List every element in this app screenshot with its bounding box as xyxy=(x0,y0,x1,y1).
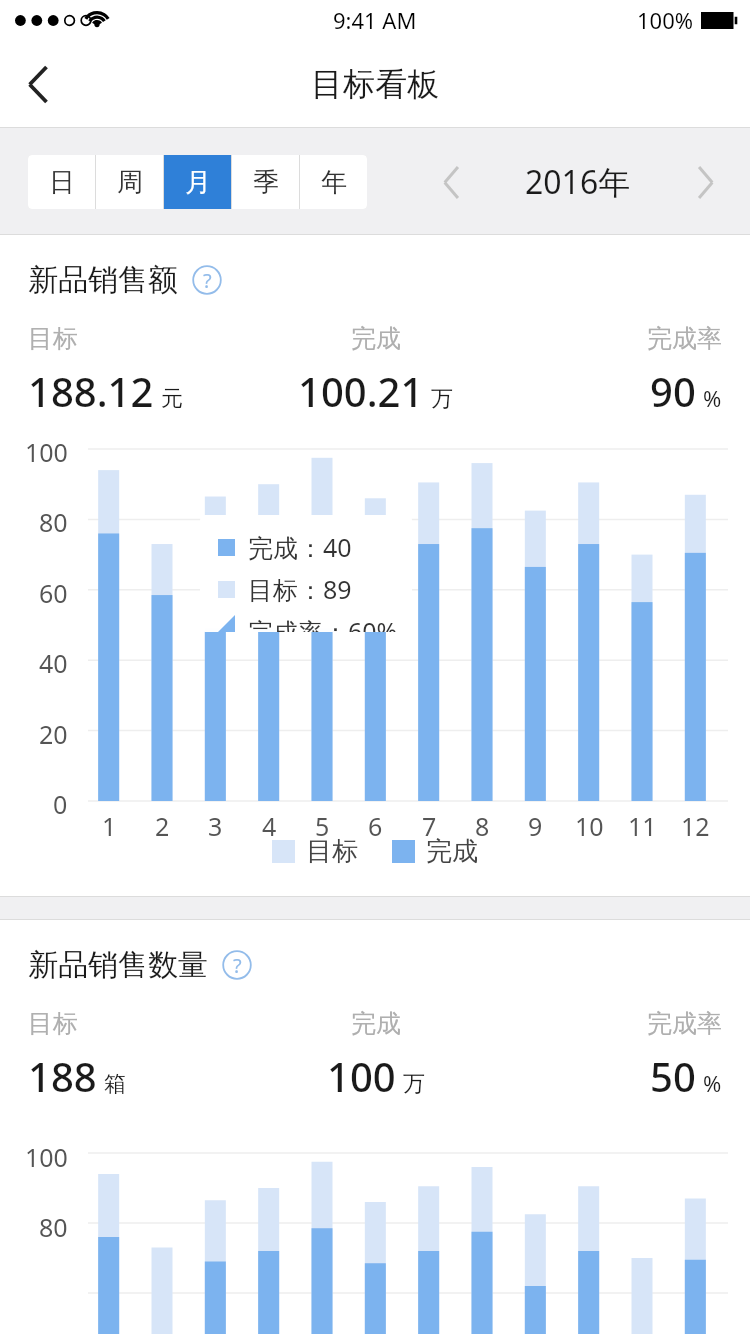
staticText: 箱 xyxy=(104,1070,126,1098)
staticText: 100.21 xyxy=(298,364,424,418)
button[interactable]: Next year xyxy=(676,153,734,211)
staticText: 目标 xyxy=(28,1008,78,1039)
staticText: 周 xyxy=(117,166,143,199)
button[interactable]: 月 xyxy=(164,155,231,209)
staticText: 90 xyxy=(650,364,696,418)
staticText: 11 xyxy=(628,809,657,843)
staticText: 1 xyxy=(102,809,117,843)
button[interactable]: 目标 xyxy=(272,835,358,868)
staticText: 完成：40 xyxy=(248,530,352,564)
button[interactable]: 完成 xyxy=(392,835,478,868)
staticText: 日 xyxy=(49,166,75,199)
staticText: 6 xyxy=(368,809,383,843)
staticText: ? xyxy=(203,267,212,294)
staticText: 完成率：60% xyxy=(248,614,398,632)
staticText: 188 xyxy=(28,1049,97,1103)
staticText: 3 xyxy=(208,809,223,843)
staticText: 万 xyxy=(431,385,453,413)
staticText: 万 xyxy=(403,1070,425,1098)
staticText: 4 xyxy=(262,809,277,843)
button[interactable]: 新品销售数量 xyxy=(28,946,750,984)
staticText: 季 xyxy=(253,166,279,199)
staticText: 新品销售数量 xyxy=(28,946,208,984)
staticText: 100 xyxy=(327,1049,396,1103)
button[interactable]: 周 xyxy=(96,155,163,209)
staticText: 完成率 xyxy=(647,1008,722,1039)
button[interactable]: 日 xyxy=(28,155,95,209)
staticText: 5 xyxy=(315,809,330,843)
button[interactable]: Back xyxy=(0,40,76,128)
staticText: 188.12 xyxy=(28,364,154,418)
staticText: 目标 xyxy=(306,835,358,868)
staticText: 80 xyxy=(39,1210,68,1244)
staticText: 目标 xyxy=(28,323,78,354)
staticText: 20 xyxy=(39,717,68,751)
staticText: 月 xyxy=(185,166,211,199)
staticText: ? xyxy=(233,952,242,979)
staticText: % xyxy=(703,1068,722,1098)
staticText: 2 xyxy=(155,809,170,843)
staticText: 50 xyxy=(650,1049,696,1103)
staticText: 12 xyxy=(681,809,710,843)
staticText: 40 xyxy=(39,646,68,680)
staticText: 完成 xyxy=(351,323,401,354)
staticText: 新品销售额 xyxy=(28,261,178,299)
staticText: 100 xyxy=(25,435,68,469)
staticText: 目标：89 xyxy=(248,572,352,606)
staticText: 完成率 xyxy=(647,323,722,354)
staticText: 目标看板 xyxy=(311,64,439,104)
staticText: 7 xyxy=(422,809,437,843)
staticText: 8 xyxy=(475,809,490,843)
staticText: 60 xyxy=(39,576,68,610)
staticText: 80 xyxy=(39,505,68,539)
button[interactable]: 季 xyxy=(232,155,299,209)
button[interactable]: 新品销售额 xyxy=(28,261,750,299)
staticText: 完成 xyxy=(426,835,478,868)
staticText: 2016年 xyxy=(525,160,631,204)
button[interactable]: Previous year xyxy=(422,153,480,211)
staticText: 年 xyxy=(321,166,347,199)
staticText: 100% xyxy=(637,5,694,35)
staticText: 完成 xyxy=(351,1008,401,1039)
staticText: 100 xyxy=(25,1140,68,1174)
staticText: % xyxy=(703,383,722,413)
button[interactable]: 年 xyxy=(300,155,367,209)
staticText: 0 xyxy=(53,787,68,821)
staticText: 元 xyxy=(161,385,183,413)
staticText: 9:41 AM xyxy=(333,5,417,35)
staticText: 10 xyxy=(575,809,604,843)
staticText: 9 xyxy=(528,809,543,843)
